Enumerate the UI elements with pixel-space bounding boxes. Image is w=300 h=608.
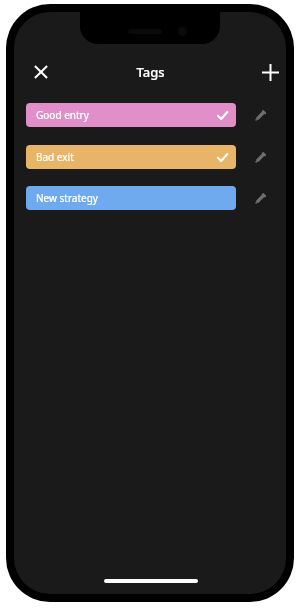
button[interactable]: Good entry xyxy=(26,103,236,127)
button[interactable]: New strategy xyxy=(26,186,236,210)
staticText: Good entry xyxy=(36,108,89,122)
button[interactable]: Add tag xyxy=(248,50,286,94)
button[interactable]: Bad exit xyxy=(26,145,236,169)
button[interactable]: Edit New strategy xyxy=(244,188,276,208)
staticText: Tags xyxy=(136,63,165,81)
button[interactable]: Close xyxy=(19,50,63,94)
button[interactable]: Edit Good entry xyxy=(244,105,276,125)
button[interactable]: Edit Bad exit xyxy=(244,147,276,167)
staticText: Bad exit xyxy=(36,150,74,164)
staticText: New strategy xyxy=(36,191,98,205)
